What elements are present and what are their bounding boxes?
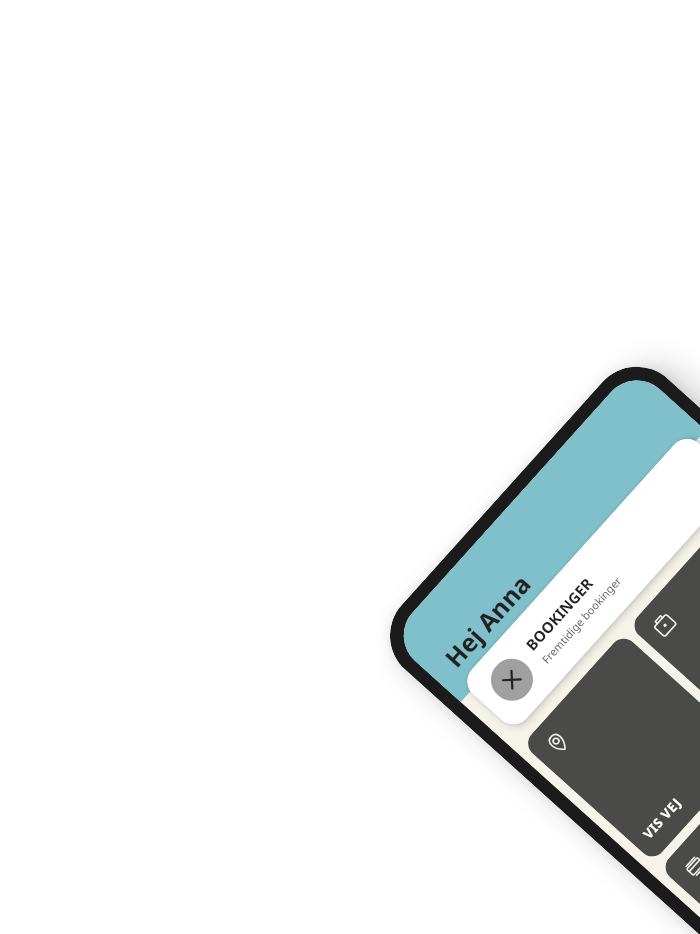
button[interactable]: MÅLSÆTNINGSSAMTALE	[629, 487, 700, 744]
staticText: BOOKINGER	[521, 573, 597, 654]
staticText: Fremtidige bookinger	[538, 573, 624, 666]
button[interactable]: BOOKINGER	[460, 431, 700, 732]
staticText: VIS VEJ	[639, 793, 686, 842]
staticText: Hej Anna	[437, 567, 538, 674]
button[interactable]: KØB MEDLEMSKAB	[660, 727, 700, 934]
button[interactable]: VIS VEJ	[522, 633, 700, 862]
